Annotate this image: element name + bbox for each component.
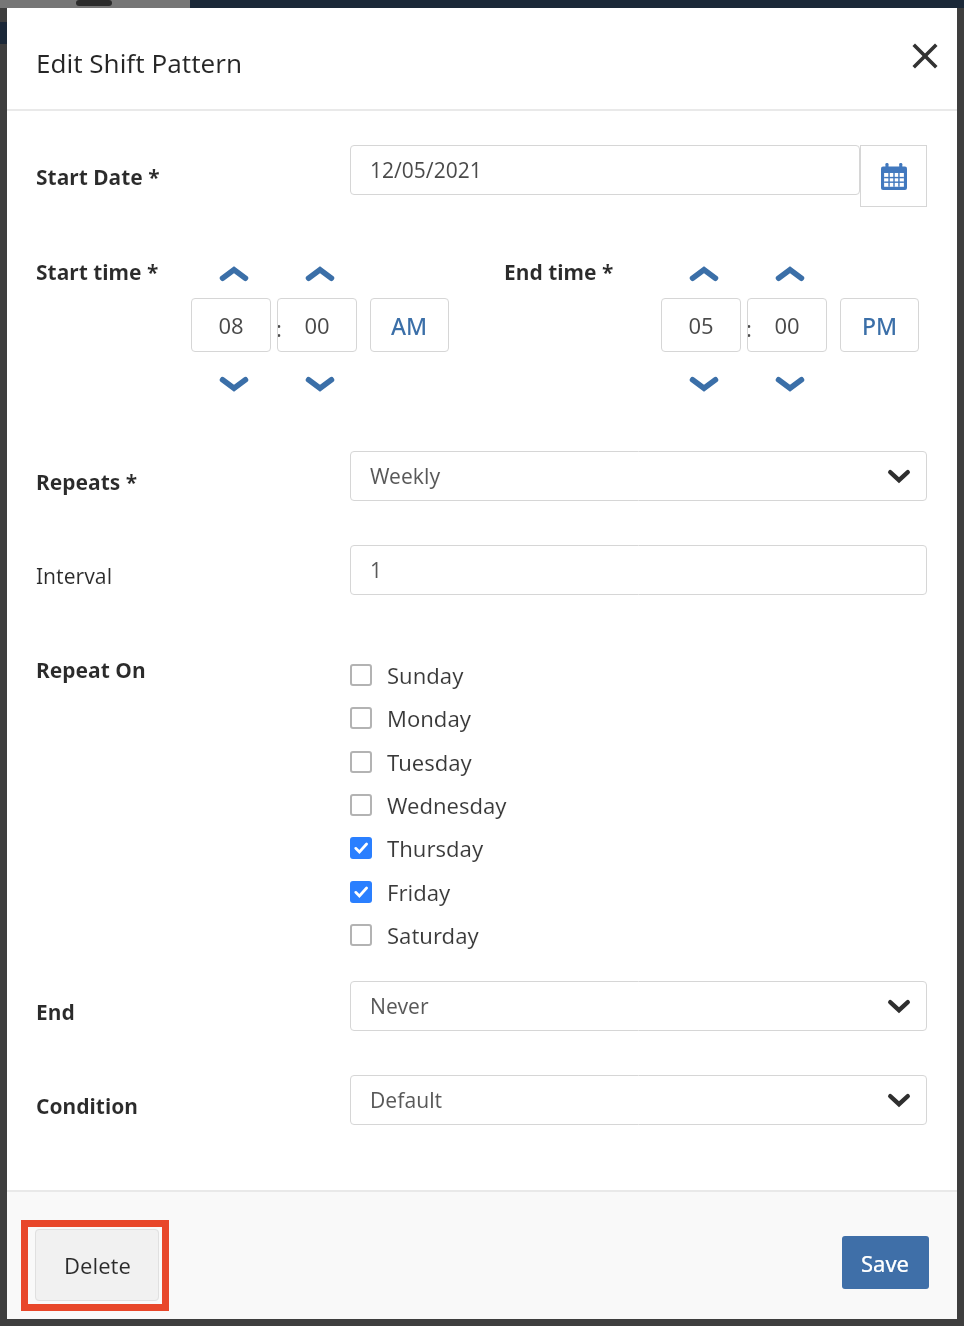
button[interactable]: Monday (350, 696, 650, 739)
staticText: Saturday (387, 920, 479, 950)
staticText: Weekly (370, 462, 441, 491)
button[interactable]: AM (370, 298, 449, 352)
staticText: AM (391, 310, 428, 341)
button[interactable]: Open calendar (860, 145, 927, 207)
button[interactable]: Thursday (350, 826, 650, 869)
staticText: End time * (504, 258, 614, 287)
staticText: 08 (218, 310, 244, 340)
button[interactable]: 08 (191, 298, 271, 352)
staticText: Friday (387, 877, 451, 907)
button[interactable]: Increase minute (300, 256, 340, 292)
button[interactable]: Sunday (350, 653, 650, 696)
staticText: Start time * (36, 258, 159, 287)
staticText: : (746, 313, 752, 343)
staticText: : (276, 313, 282, 343)
staticText: Sunday (387, 660, 464, 690)
button[interactable]: Default (350, 1075, 927, 1125)
button[interactable]: 12/05/2021 (350, 145, 860, 195)
staticText: Start Date * (36, 163, 160, 192)
button[interactable]: 00 (277, 298, 357, 352)
staticText: Save (861, 1248, 910, 1278)
staticText: Repeat On (36, 656, 146, 685)
button[interactable]: Weekly (350, 451, 927, 501)
staticText: Default (370, 1086, 443, 1115)
button[interactable]: Decrease minute (770, 366, 810, 402)
button[interactable]: Tuesday (350, 740, 650, 783)
staticText: Never (370, 992, 429, 1021)
staticText: Delete (64, 1250, 131, 1280)
button[interactable]: Increase minute (770, 256, 810, 292)
staticText: Edit Shift Pattern (36, 45, 242, 80)
button[interactable]: Decrease minute (300, 366, 340, 402)
button[interactable]: Increase hour (684, 256, 724, 292)
staticText: Monday (387, 703, 471, 733)
button[interactable]: Friday (350, 870, 650, 913)
staticText: Tuesday (387, 747, 472, 777)
button[interactable]: Close (903, 34, 947, 78)
button[interactable]: 1 (350, 545, 927, 595)
staticText: 05 (688, 310, 714, 340)
staticText: Wednesday (387, 790, 507, 820)
button[interactable]: Saturday (350, 913, 650, 956)
button[interactable]: Decrease hour (684, 366, 724, 402)
button[interactable]: PM (840, 298, 919, 352)
staticText: Repeats * (36, 468, 138, 497)
button[interactable]: Delete (35, 1229, 159, 1301)
button[interactable]: Decrease hour (214, 366, 254, 402)
staticText: 12/05/2021 (370, 156, 482, 185)
button[interactable]: Wednesday (350, 783, 650, 826)
staticText: 1 (370, 556, 383, 585)
button[interactable]: 05 (661, 298, 741, 352)
staticText: 00 (304, 310, 330, 340)
staticText: End (36, 998, 75, 1027)
staticText: 00 (774, 310, 800, 340)
staticText: Condition (36, 1092, 138, 1121)
button[interactable]: Save (842, 1236, 929, 1289)
button[interactable]: 00 (747, 298, 827, 352)
staticText: Interval (36, 562, 113, 591)
button[interactable]: Increase hour (214, 256, 254, 292)
staticText: PM (862, 310, 898, 341)
button[interactable]: Never (350, 981, 927, 1031)
staticText: Thursday (387, 833, 484, 863)
